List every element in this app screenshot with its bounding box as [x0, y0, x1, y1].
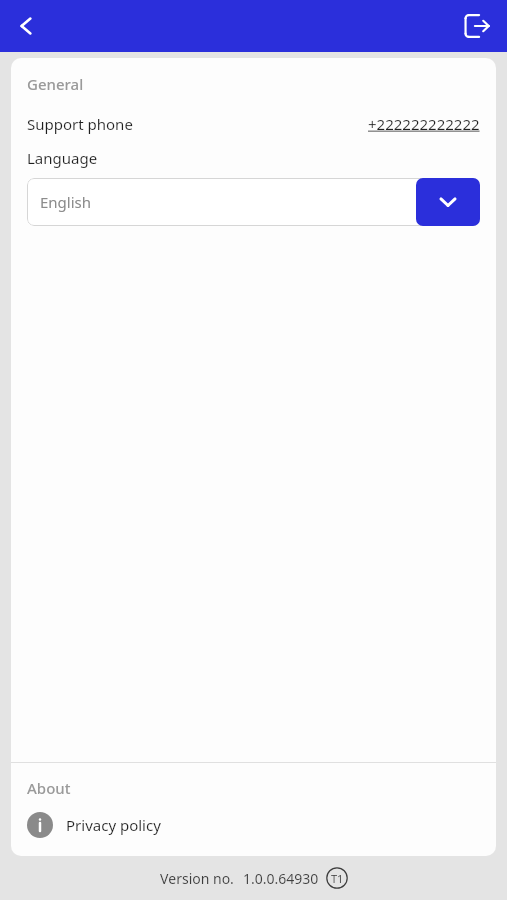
button[interactable]: Support phone [11, 112, 496, 136]
staticText: +222222222222 [368, 114, 480, 134]
button[interactable]: Open language list [416, 178, 480, 226]
staticText: Language [27, 148, 98, 168]
button[interactable]: Privacy policy [11, 808, 496, 842]
staticText: Version no. [160, 869, 234, 888]
button[interactable]: English [27, 178, 480, 226]
staticText: English [40, 192, 92, 212]
staticText: T1 [331, 871, 344, 886]
staticText: Privacy policy [66, 815, 161, 835]
staticText: Support phone [27, 114, 133, 134]
staticText: General [27, 74, 84, 94]
staticText: About [27, 778, 71, 798]
button[interactable]: Back [4, 4, 48, 48]
button[interactable]: Log out [455, 4, 499, 48]
staticText: 1.0.0.64930 [243, 869, 319, 888]
